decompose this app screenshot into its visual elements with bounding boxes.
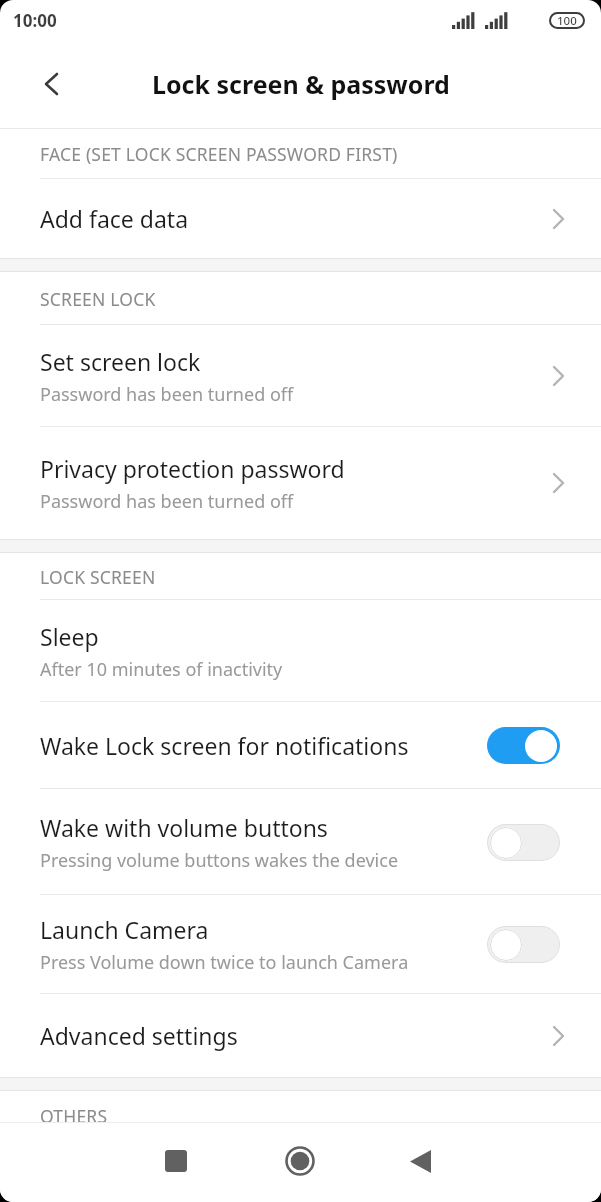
staticText: OTHERS bbox=[40, 1104, 108, 1122]
staticText: FACE (SET LOCK SCREEN PASSWORD FIRST) bbox=[40, 142, 398, 166]
button[interactable]: Wake with volume buttons bbox=[0, 789, 601, 895]
button[interactable] bbox=[285, 1146, 315, 1176]
button[interactable]: Add face data bbox=[0, 179, 601, 258]
button[interactable] bbox=[42, 71, 62, 97]
staticText: Sleep bbox=[40, 621, 99, 652]
button[interactable] bbox=[487, 926, 560, 963]
staticText: Launch Camera bbox=[40, 914, 209, 945]
staticText: Password has been turned off bbox=[40, 382, 294, 407]
button[interactable]: Wake Lock screen for notifications bbox=[0, 702, 601, 789]
staticText: LOCK SCREEN bbox=[40, 565, 156, 589]
button[interactable]: Set screen lock bbox=[0, 325, 601, 427]
button[interactable]: Privacy protection password bbox=[0, 427, 601, 539]
staticText: Privacy protection password bbox=[40, 453, 345, 484]
staticText: 10:00 bbox=[13, 9, 57, 32]
button[interactable]: Launch Camera bbox=[0, 895, 601, 994]
button[interactable] bbox=[487, 727, 560, 764]
staticText: Password has been turned off bbox=[40, 489, 294, 514]
button[interactable] bbox=[408, 1149, 433, 1174]
staticText: Lock screen & password bbox=[152, 67, 450, 101]
staticText: Add face data bbox=[40, 203, 189, 234]
staticText: Wake Lock screen for notifications bbox=[40, 730, 409, 761]
staticText: Press Volume down twice to launch Camera bbox=[40, 950, 409, 975]
staticText: Advanced settings bbox=[40, 1020, 238, 1051]
button[interactable]: Advanced settings bbox=[0, 994, 601, 1077]
staticText: SCREEN LOCK bbox=[40, 287, 156, 311]
staticText: Pressing volume buttons wakes the device bbox=[40, 848, 399, 873]
button[interactable] bbox=[487, 824, 560, 861]
button[interactable]: Sleep bbox=[0, 600, 601, 702]
staticText: Set screen lock bbox=[40, 346, 201, 377]
staticText: Wake with volume buttons bbox=[40, 812, 328, 843]
staticText: 100 bbox=[557, 13, 577, 29]
button[interactable] bbox=[165, 1150, 187, 1172]
staticText: After 10 minutes of inactivity bbox=[40, 657, 283, 682]
